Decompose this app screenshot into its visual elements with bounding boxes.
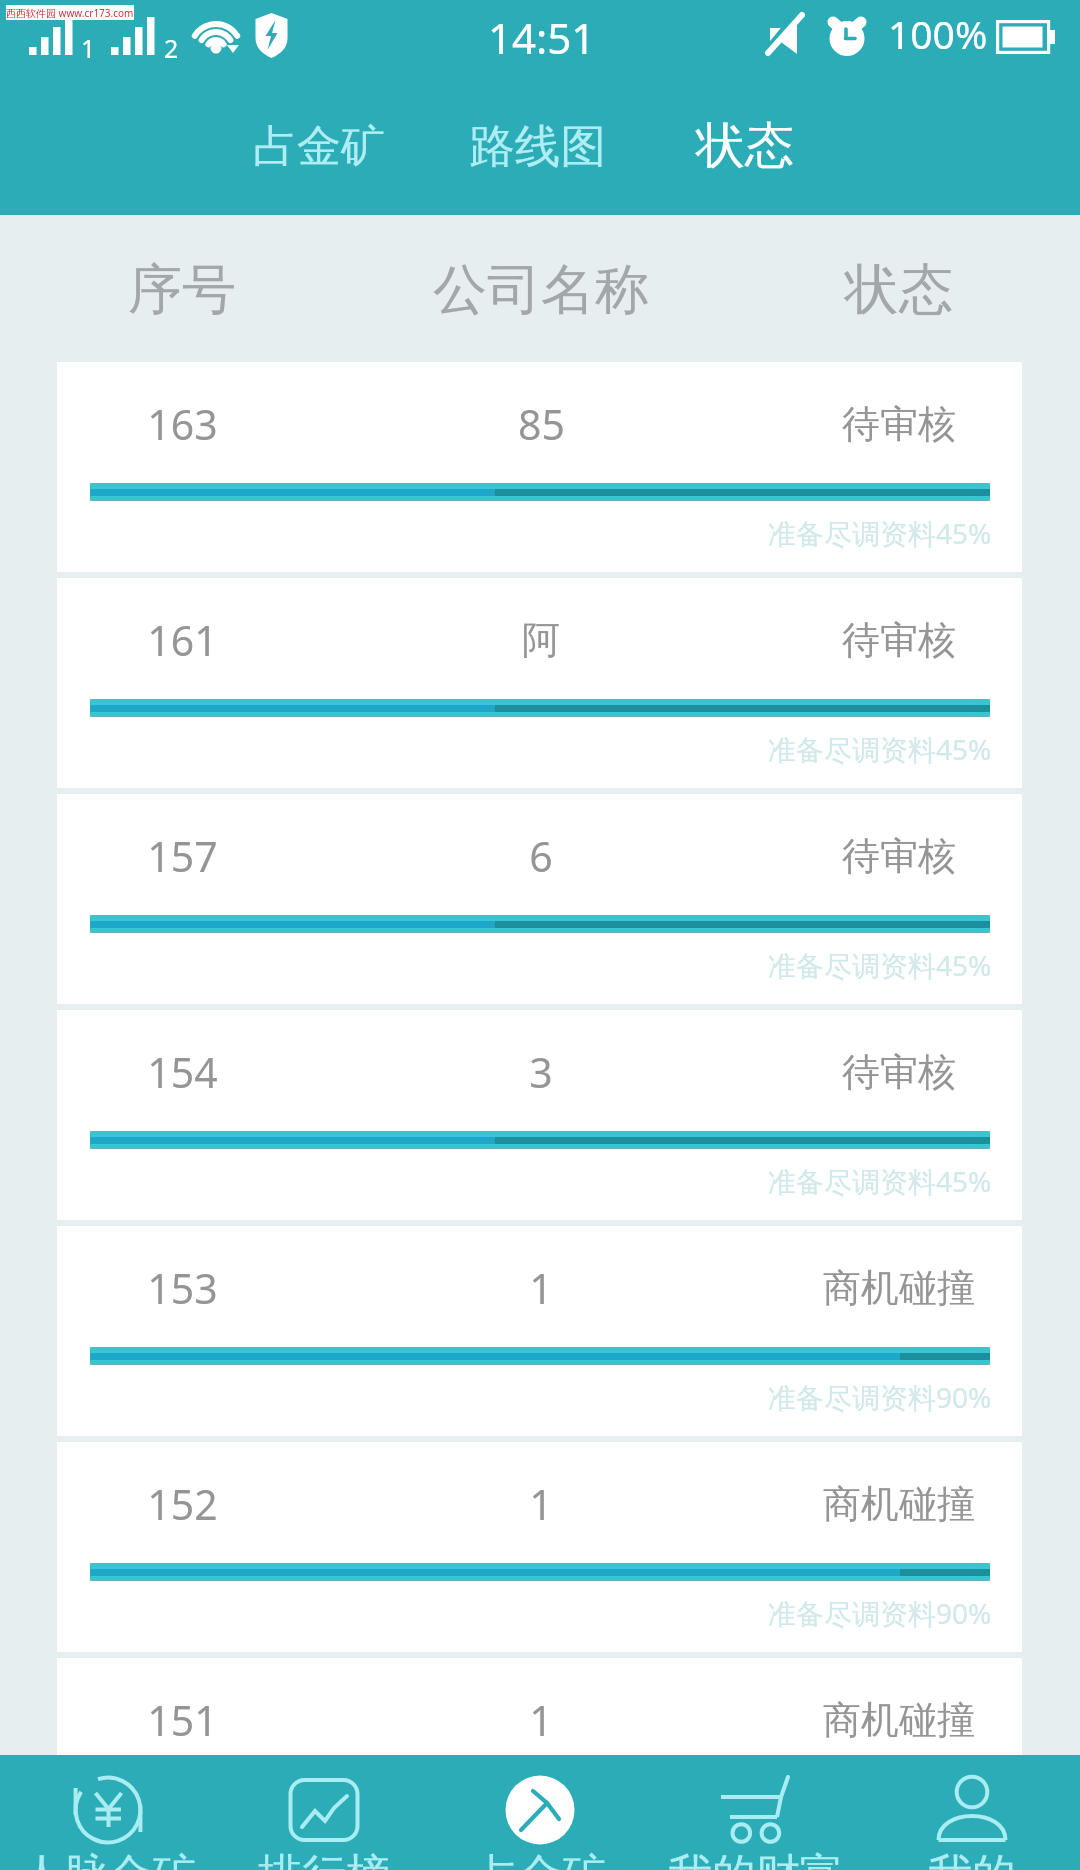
staticText: 西西软件园 www.cr173.com [6,6,134,20]
staticText: 准备尽调资料45% [768,730,992,768]
staticText: 待审核 [842,1048,956,1096]
staticText: 准备尽调资料45% [768,946,992,984]
staticText: 商机碰撞 [823,1696,975,1744]
staticText: 1 [529,1476,553,1532]
staticText: 85 [518,396,565,452]
staticText: 准备尽调资料45% [768,514,992,552]
button[interactable]: 154 [57,1010,1022,1220]
staticText: 1 [529,1260,553,1316]
button[interactable]: 人脉金矿 [0,1755,216,1870]
staticText: 占金矿 [474,1848,606,1870]
staticText: 准备尽调资料90% [768,1810,992,1848]
staticText: 我的财富 [668,1848,844,1870]
button[interactable]: 157 [57,794,1022,1004]
staticText: 163 [147,396,218,452]
staticText: 序号 [128,256,236,324]
staticText: 14:51 [488,9,596,66]
staticText: 6 [529,828,553,884]
staticText: 排行榜 [258,1848,390,1870]
staticText: 100% [888,7,988,60]
staticText: 待审核 [842,616,956,664]
staticText: 状态 [845,256,953,324]
staticText: 157 [147,828,218,884]
staticText: 准备尽调资料90% [768,1594,992,1632]
button[interactable]: 153 [57,1226,1022,1436]
button[interactable]: 163 [57,362,1022,572]
button[interactable]: 占金矿 [432,1755,648,1870]
staticText: 公司名称 [433,256,649,324]
staticText: 151 [147,1692,218,1748]
staticText: 3 [529,1044,553,1100]
staticText: 待审核 [842,832,956,880]
button[interactable]: 我的财富 [648,1755,864,1870]
staticText: 1 [81,31,96,65]
button[interactable]: 状态 [692,98,798,194]
staticText: 152 [147,1476,218,1532]
staticText: 154 [147,1044,218,1100]
staticText: 路线图 [469,118,606,175]
button[interactable]: 占金矿 [247,98,390,194]
staticText: 准备尽调资料90% [768,1378,992,1416]
staticText: 占金矿 [253,119,385,174]
staticText: 1 [529,1692,553,1748]
button[interactable]: 161 [57,578,1022,788]
button[interactable]: 路线图 [464,98,611,194]
button[interactable]: 我的 [864,1755,1080,1870]
staticText: 我的 [928,1848,1016,1870]
staticText: 161 [147,612,218,668]
button[interactable]: 排行榜 [216,1755,432,1870]
button[interactable]: 152 [57,1442,1022,1652]
staticText: 商机碰撞 [823,1480,975,1528]
staticText: 人脉金矿 [20,1848,196,1870]
staticText: 阿 [522,616,560,664]
staticText: 商机碰撞 [823,1264,975,1312]
staticText: 准备尽调资料45% [768,1162,992,1200]
staticText: 待审核 [842,400,956,448]
staticText: 状态 [696,115,794,177]
staticText: 2 [164,31,179,65]
button[interactable]: 151 [57,1658,1022,1868]
staticText: 153 [147,1260,218,1316]
